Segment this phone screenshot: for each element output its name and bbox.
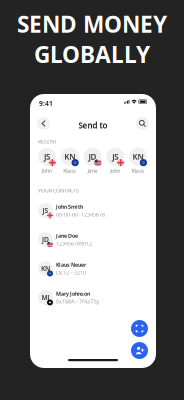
staticText: Send to bbox=[78, 120, 107, 131]
button[interactable]: KN bbox=[129, 148, 147, 174]
staticText: DE12 ··· 3210 bbox=[56, 269, 86, 276]
button[interactable]: Search bbox=[136, 117, 149, 130]
button[interactable]: KN bbox=[38, 256, 148, 281]
staticText: JD bbox=[42, 235, 49, 244]
staticText: John bbox=[42, 167, 52, 174]
staticText: JD bbox=[88, 151, 96, 162]
button[interactable]: KN bbox=[61, 148, 79, 174]
staticText: Mary Johnson bbox=[56, 290, 90, 297]
staticText: JS bbox=[112, 151, 118, 162]
button[interactable]: JD bbox=[38, 227, 148, 252]
button[interactable]: JS bbox=[38, 148, 56, 174]
staticText: Klaus Neuer bbox=[56, 261, 86, 268]
staticText: 00-00-00 · 12345678 bbox=[56, 211, 105, 218]
button[interactable]: Add contact bbox=[131, 342, 148, 359]
staticText: Klaus bbox=[63, 167, 76, 174]
staticText: Klaus bbox=[131, 167, 144, 174]
button[interactable]: JS bbox=[106, 148, 124, 174]
staticText: RECENT bbox=[38, 138, 57, 145]
staticText: John Smith bbox=[56, 203, 83, 210]
staticText: Jane Doe bbox=[56, 232, 78, 239]
staticText: KN bbox=[132, 151, 143, 162]
staticText: 9:41 bbox=[39, 99, 53, 108]
staticText: KN bbox=[41, 264, 50, 273]
staticText: MJ bbox=[41, 293, 49, 302]
button[interactable]: JS bbox=[38, 198, 148, 223]
staticText: JS bbox=[44, 151, 50, 162]
staticText: John bbox=[110, 167, 120, 174]
staticText: GLOBALLY bbox=[34, 39, 150, 69]
staticText: 123456789012 bbox=[56, 240, 92, 247]
button[interactable]: Back bbox=[37, 117, 50, 130]
staticText: 0x1b8A ··· 7f4a73g bbox=[56, 298, 99, 305]
staticText: JS bbox=[42, 206, 48, 215]
button[interactable]: MJ bbox=[38, 285, 148, 310]
button[interactable]: JD bbox=[83, 148, 101, 174]
staticText: Jane bbox=[87, 167, 97, 174]
staticText: YOUR CONTACTS bbox=[38, 187, 79, 194]
button[interactable]: Scan QR code bbox=[131, 320, 148, 337]
staticText: KN bbox=[64, 151, 75, 162]
staticText: SEND MONEY bbox=[17, 9, 167, 39]
